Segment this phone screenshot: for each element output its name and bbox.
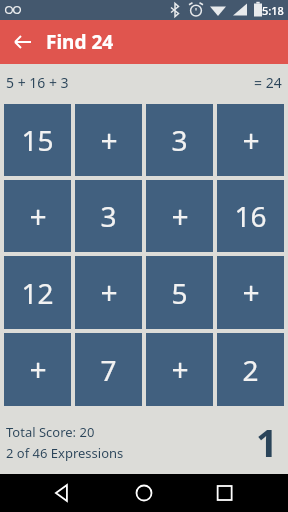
staticText: 12 <box>21 274 54 312</box>
staticText: + <box>171 196 189 237</box>
button[interactable]: 5 <box>146 256 213 329</box>
staticText: 7 <box>100 351 117 389</box>
button[interactable]: + <box>146 333 213 406</box>
button[interactable]: 3 <box>75 180 142 252</box>
button[interactable]: + <box>146 180 213 252</box>
button[interactable]: + <box>217 256 284 329</box>
staticText: = 24 <box>254 73 282 92</box>
button[interactable]: 7 <box>75 333 142 406</box>
staticText: + <box>242 120 260 161</box>
staticText: + <box>100 120 118 161</box>
button[interactable]: + <box>75 256 142 329</box>
staticText: + <box>29 196 47 237</box>
staticText: 2 of 46 Expressions <box>6 444 124 462</box>
button[interactable]: + <box>75 104 142 176</box>
staticText: 5 <box>171 274 188 312</box>
staticText: 2 <box>242 351 259 389</box>
button[interactable]: + <box>4 180 71 252</box>
button[interactable]: 2 <box>217 333 284 406</box>
button[interactable]: Back <box>0 20 46 64</box>
staticText: 3 <box>171 121 188 159</box>
button[interactable]: + <box>4 333 71 406</box>
button[interactable]: + <box>217 104 284 176</box>
staticText: 3 <box>100 197 117 235</box>
staticText: Find 24 <box>46 29 114 55</box>
staticText: + <box>242 272 260 313</box>
staticText: 16 <box>234 197 267 235</box>
staticText: + <box>171 349 189 390</box>
staticText: 5:18 <box>262 3 284 18</box>
staticText: 15 <box>21 121 54 159</box>
staticText: 1 <box>256 416 278 468</box>
staticText: + <box>100 272 118 313</box>
staticText: Total Score: 20 <box>6 423 95 441</box>
button[interactable]: 3 <box>146 104 213 176</box>
staticText: 5 + 16 + 3 <box>6 73 69 92</box>
button[interactable]: 15 <box>4 104 71 176</box>
staticText: + <box>29 349 47 390</box>
button[interactable]: 16 <box>217 180 284 252</box>
button[interactable]: 12 <box>4 256 71 329</box>
